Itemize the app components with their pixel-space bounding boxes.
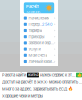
button[interactable]: Начисления [20, 15, 58, 21]
staticText: Услуги [28, 47, 40, 51]
button[interactable]: Приборы [20, 34, 58, 40]
staticText: Хорошие чеки и метры [2, 94, 43, 98]
staticText: за июль [26, 10, 40, 14]
staticText: Мои счета [28, 53, 47, 58]
staticText: Начисления [28, 16, 49, 20]
button[interactable]: Мои счета [20, 52, 58, 58]
staticText: 2 540 [42, 22, 53, 27]
staticText: Перерасчёт [28, 22, 42, 27]
staticText: Заявки и обращения [28, 40, 54, 45]
staticText: Доступ на расчёт в ЖКХ: можно оплатить Ж… [2, 80, 82, 84]
staticText: Много за адрес, зарабатывать ЕСД 🔥 [2, 87, 73, 91]
staticText: Приборы [28, 34, 44, 39]
staticText: нужен сервис к этому: сервис доступен в … [39, 73, 76, 77]
button[interactable]: Перерасчёт [20, 21, 58, 27]
staticText: Личный кабинет ЖКХ [28, 59, 54, 64]
staticText: 👍 [76, 73, 81, 77]
staticText: Расчёт [26, 4, 39, 9]
button[interactable]: Тарифы [20, 27, 58, 34]
button[interactable]: Заявки и обращения [20, 40, 58, 46]
staticText: Тарифы [28, 28, 42, 33]
staticText: Работа найти [2, 73, 27, 77]
button[interactable]: Расчёт за июль [24, 2, 54, 13]
staticText: жилья [27, 73, 38, 77]
button[interactable]: Личный кабинет ЖКХ [20, 58, 58, 65]
button[interactable]: Услуги [20, 46, 58, 52]
